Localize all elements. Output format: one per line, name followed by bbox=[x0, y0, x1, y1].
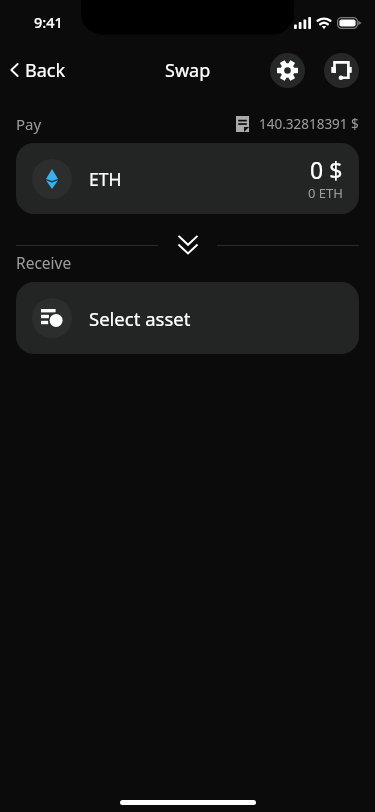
button[interactable]: Support bbox=[324, 53, 359, 88]
staticText: Receive bbox=[16, 252, 72, 273]
button[interactable]: Swap direction bbox=[158, 236, 217, 254]
staticText: Pay bbox=[16, 114, 42, 134]
staticText: 9:41 bbox=[34, 12, 63, 32]
button[interactable]: Settings bbox=[270, 53, 305, 88]
staticText: ETH bbox=[89, 167, 122, 191]
staticText: Select asset bbox=[89, 306, 191, 331]
button[interactable]: Select asset bbox=[16, 282, 359, 354]
staticText: Back bbox=[25, 58, 66, 83]
staticText: Swap bbox=[165, 58, 211, 83]
staticText: 0 $ bbox=[310, 154, 343, 185]
button[interactable]: ETH bbox=[16, 143, 359, 214]
staticText: 0 ETH bbox=[308, 184, 343, 202]
staticText: 140.32818391 $ bbox=[259, 115, 359, 133]
button[interactable]: Back bbox=[0, 44, 78, 96]
